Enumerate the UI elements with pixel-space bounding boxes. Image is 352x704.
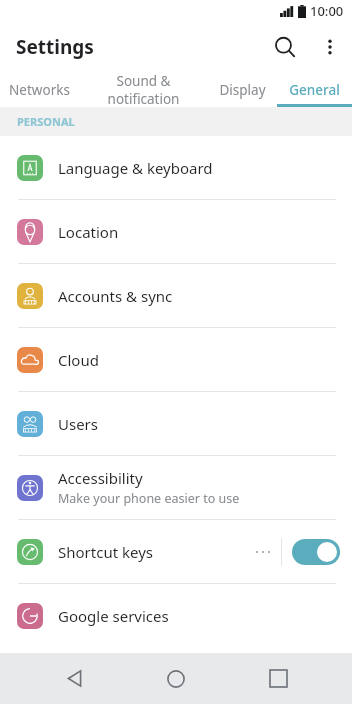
button[interactable]: Options <box>252 541 274 563</box>
button[interactable]: Google services <box>0 584 352 647</box>
staticText: Language & keyboard <box>58 158 213 178</box>
button[interactable]: Location <box>0 200 352 263</box>
staticText: PERSONAL <box>17 114 75 129</box>
staticText: 10:00 <box>310 2 344 20</box>
staticText: Shortcut keys <box>58 542 153 562</box>
staticText: General <box>289 81 340 99</box>
button[interactable]: Cloud <box>0 328 352 391</box>
staticText: Cloud <box>58 350 99 370</box>
button[interactable]: Back <box>46 653 102 704</box>
staticText: Networks <box>9 81 70 99</box>
button[interactable]: Search <box>262 24 308 70</box>
button[interactable]: Accessibility <box>0 456 352 519</box>
button[interactable]: Language & keyboard <box>0 136 352 199</box>
staticText: Accessibility <box>58 468 143 488</box>
staticText: Settings <box>16 34 94 60</box>
staticText: Make your phone easier to use <box>58 490 240 507</box>
button[interactable]: Sound & notification <box>79 72 208 107</box>
staticText: Sound & notification <box>79 72 208 107</box>
button[interactable]: Accounts & sync <box>0 264 352 327</box>
button[interactable]: Home <box>148 653 204 704</box>
button[interactable]: General <box>277 72 352 107</box>
button[interactable]: Networks <box>0 72 79 107</box>
button[interactable]: Display <box>208 72 277 107</box>
button[interactable]: Users <box>0 392 352 455</box>
staticText: Users <box>58 414 98 434</box>
staticText: Google services <box>58 606 169 626</box>
button[interactable]: More options <box>308 25 352 69</box>
staticText: Display <box>219 81 266 99</box>
staticText: Accounts & sync <box>58 286 173 306</box>
button[interactable]: Shortcut keys <box>0 520 352 583</box>
button[interactable]: Recent apps <box>250 653 306 704</box>
staticText: Location <box>58 222 119 242</box>
button[interactable]: Shortcut keys toggle <box>292 539 340 565</box>
